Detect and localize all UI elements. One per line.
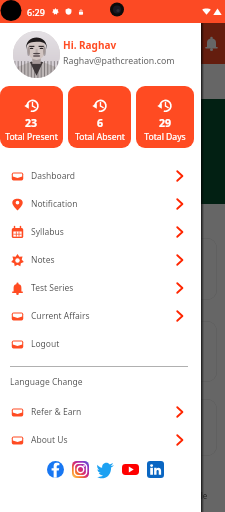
staticText: Total Absent: [75, 131, 125, 143]
button[interactable]: Facebook: [47, 461, 64, 478]
staticText: Notification: [31, 198, 78, 210]
staticText: 6:29: [27, 6, 45, 18]
staticText: Test Series: [31, 282, 74, 294]
staticText: Weekly Quiz: [17, 330, 63, 341]
staticText: About Us: [31, 434, 68, 446]
staticText: 30 Questions: [17, 359, 64, 369]
staticText: Daily Current: [17, 247, 67, 258]
button[interactable]: Dashboard: [0, 162, 201, 190]
button[interactable]: Test Series: [0, 274, 201, 302]
other: Open Refer & Earn: [174, 406, 186, 418]
other: Open Current Affairs: [174, 310, 186, 322]
staticText: 6: [97, 116, 104, 130]
other: Open Dashboard: [174, 170, 186, 182]
button[interactable]: Syllabus: [78, 460, 125, 512]
button[interactable]: Syllabus: [0, 218, 201, 246]
staticText: Dashboard: [31, 170, 76, 182]
staticText: Monthly Quiz: [17, 408, 68, 419]
staticText: Current Affairs: [31, 310, 90, 322]
button[interactable]: Profile: [172, 460, 219, 512]
button[interactable]: Notes: [0, 246, 201, 274]
staticText: Notes: [31, 254, 55, 266]
button[interactable]: Logout: [0, 330, 201, 358]
button[interactable]: Notifications: [204, 36, 219, 51]
button[interactable]: 6: [68, 86, 131, 148]
button[interactable]: Notification: [0, 190, 201, 218]
staticText: Raghav@pathcreation.com: [63, 55, 175, 67]
button[interactable]: Monthly Quiz: [8, 399, 217, 456]
staticText: 24 Questions: [17, 276, 64, 286]
staticText: Syllabus: [31, 226, 64, 238]
staticText: Refer & Earn: [31, 406, 82, 418]
other: Open Notification: [174, 198, 186, 210]
button[interactable]: Home: [30, 460, 78, 512]
button[interactable]: About Us: [0, 426, 201, 454]
button[interactable]: Language Change: [10, 376, 83, 388]
staticText: Hi. Raghav: [63, 38, 117, 52]
staticText: 29: [159, 116, 172, 130]
other: Open Test Series: [174, 282, 186, 294]
button[interactable]: Daily Current: [8, 238, 217, 300]
other: Open Syllabus: [174, 226, 186, 238]
button[interactable]: 29: [136, 86, 194, 148]
button[interactable]: LinkedIn: [147, 461, 164, 478]
other: Open Notes: [174, 254, 186, 266]
staticText: Test Series: [17, 344, 57, 355]
button[interactable]: 23: [0, 86, 63, 148]
button[interactable]: Twitter: [97, 461, 114, 478]
staticText: Logout: [31, 338, 60, 350]
button[interactable]: Refer & Earn: [0, 398, 201, 426]
staticText: Total Present: [5, 131, 58, 143]
staticText: 23: [25, 116, 38, 130]
staticText: Affairs Quiz: [17, 261, 61, 272]
other: Open About Us: [174, 434, 186, 446]
staticText: Profile: [183, 490, 208, 501]
button[interactable]: Notes: [125, 460, 172, 512]
button[interactable]: Current Affairs: [0, 302, 201, 330]
button[interactable]: Instagram: [72, 461, 89, 478]
staticText: Total Days: [144, 131, 186, 143]
button[interactable]: YouTube: [122, 461, 139, 478]
staticText: 45 Questions: [17, 437, 64, 447]
button[interactable]: Weekly Quiz: [8, 321, 217, 382]
